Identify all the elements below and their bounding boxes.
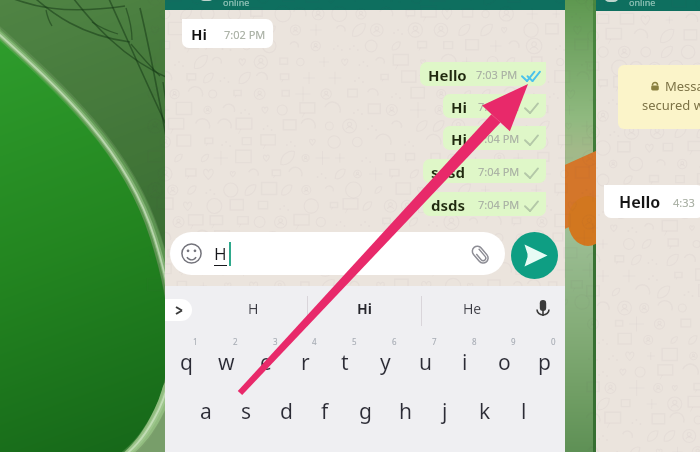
- button[interactable]: l: [505, 387, 543, 435]
- button[interactable]: d: [267, 387, 305, 435]
- staticText: 7:04 PM: [478, 99, 520, 114]
- staticText: 7: [432, 336, 437, 347]
- button[interactable]: i: [446, 338, 484, 386]
- staticText: o: [498, 348, 511, 377]
- button[interactable]: Hi: [182, 19, 273, 48]
- staticText: sdsd: [431, 162, 466, 179]
- staticText: g: [359, 397, 372, 426]
- button[interactable]: a: [187, 387, 225, 435]
- staticText: y: [380, 348, 391, 377]
- button[interactable]: Contact photo: [604, 0, 619, 2]
- button[interactable]: e: [247, 338, 285, 386]
- staticText: 4:33: [673, 195, 695, 210]
- button[interactable]: w: [207, 338, 245, 386]
- button[interactable]: g: [346, 387, 384, 435]
- button[interactable]: h: [386, 387, 424, 435]
- button[interactable]: r: [286, 338, 324, 386]
- staticText: r: [301, 348, 310, 377]
- staticText: Hi: [357, 299, 372, 318]
- staticText: He: [463, 299, 482, 318]
- staticText: d: [280, 397, 293, 426]
- other: Attach file: [470, 243, 492, 265]
- button[interactable]: Hello: [420, 62, 546, 86]
- staticText: Messages: [665, 77, 700, 95]
- staticText: 9: [511, 336, 516, 347]
- staticText: w: [218, 348, 235, 377]
- button[interactable]: He: [437, 286, 507, 331]
- staticText: 4: [312, 336, 317, 347]
- staticText: h: [399, 397, 412, 426]
- button[interactable]: y: [366, 338, 404, 386]
- staticText: 7:02 PM: [224, 27, 266, 42]
- staticText: q: [180, 348, 193, 377]
- button[interactable]: Hi: [329, 286, 399, 331]
- staticText: online: [629, 0, 656, 7]
- staticText: j: [442, 397, 448, 426]
- staticText: Hi: [451, 97, 467, 114]
- button[interactable]: j: [426, 387, 464, 435]
- button[interactable]: sdsd: [423, 159, 546, 183]
- staticText: 0: [551, 336, 556, 347]
- staticText: 1: [193, 336, 198, 347]
- staticText: e: [260, 348, 272, 377]
- staticText: f: [321, 397, 329, 426]
- button[interactable]: Messages: [618, 65, 700, 129]
- button[interactable]: s: [227, 387, 265, 435]
- button[interactable]: Voice input: [532, 297, 554, 319]
- staticText: Hello: [619, 191, 661, 213]
- staticText: 8: [472, 336, 477, 347]
- button[interactable]: Contact photo: [199, 0, 214, 1]
- button[interactable]: q: [167, 338, 205, 386]
- button[interactable]: H: [218, 286, 288, 331]
- staticText: Hi: [191, 24, 207, 44]
- staticText: p: [538, 348, 551, 377]
- staticText: online: [223, 0, 250, 6]
- button[interactable]: u: [406, 338, 444, 386]
- staticText: l: [521, 397, 527, 426]
- staticText: k: [479, 397, 491, 426]
- button[interactable]: dsds: [423, 192, 546, 216]
- staticText: H: [248, 299, 259, 318]
- staticText: 7:04 PM: [478, 164, 520, 179]
- other: Emoji: [181, 243, 202, 264]
- staticText: t: [341, 348, 349, 377]
- staticText: 7:04 PM: [478, 197, 520, 212]
- button[interactable]: o: [485, 338, 523, 386]
- staticText: i: [462, 348, 468, 377]
- button[interactable]: p: [525, 338, 563, 386]
- staticText: a: [200, 397, 212, 426]
- staticText: H: [214, 242, 227, 265]
- button[interactable]: Hi: [443, 126, 546, 150]
- staticText: 7:04 PM: [478, 131, 520, 146]
- button[interactable]: t: [326, 338, 364, 386]
- staticText: Hello: [428, 65, 467, 82]
- staticText: 5: [352, 336, 357, 347]
- button[interactable]: Send message: [511, 232, 558, 279]
- staticText: 2: [233, 336, 238, 347]
- button[interactable]: k: [466, 387, 504, 435]
- staticText: Hi: [451, 129, 467, 146]
- button[interactable]: f: [306, 387, 344, 435]
- staticText: s: [241, 397, 252, 426]
- button[interactable]: Hi: [443, 94, 546, 118]
- button[interactable]: Show more suggestions: [165, 299, 192, 321]
- staticText: u: [419, 348, 432, 377]
- staticText: dsds: [431, 195, 466, 212]
- button[interactable]: Hello: [604, 185, 700, 218]
- staticText: secured with: [642, 96, 700, 114]
- staticText: 7:03 PM: [476, 67, 518, 82]
- staticText: 3: [273, 336, 278, 347]
- button[interactable]: Emoji: [170, 232, 505, 275]
- staticText: 6: [392, 336, 397, 347]
